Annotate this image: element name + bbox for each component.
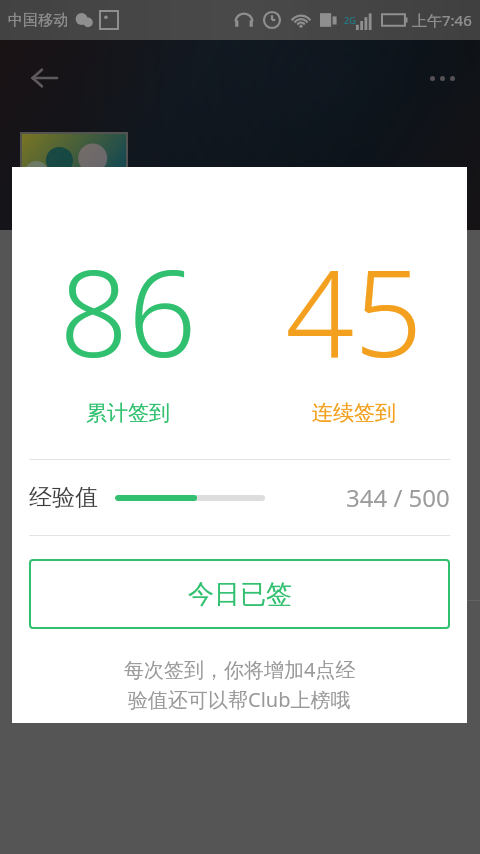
- button[interactable]: Compose: [373, 250, 457, 334]
- staticText: 34: [28, 626, 46, 646]
- staticText: 经验值: [29, 483, 98, 512]
- staticText: 86: [59, 229, 197, 392]
- staticText: 连续签到: [312, 400, 396, 426]
- staticText: 上午7:46: [412, 10, 472, 30]
- staticText: 钮下方的图标）参与活动！...: [66, 648, 323, 675]
- button[interactable]: More options: [418, 54, 466, 102]
- staticText: 累计签到: [86, 400, 170, 426]
- button[interactable]: Back: [20, 54, 68, 102]
- staticText: 验值还可以帮Club上榜哦: [128, 686, 351, 713]
- staticText: TFBOYS: [150, 164, 255, 203]
- staticText: 2G: [344, 14, 356, 26]
- button[interactable]: 今日已签: [29, 559, 450, 629]
- staticText: 344 / 500: [346, 481, 450, 514]
- staticText: 中国移动: [8, 11, 68, 30]
- staticText: 点击活动图标（即“签: [121, 621, 309, 648]
- staticText: 45: [285, 229, 423, 392]
- staticText: 每次签到，你将增加4点经: [124, 656, 356, 683]
- staticText: 今日已签: [188, 578, 292, 611]
- staticText: 置顶: [71, 623, 109, 647]
